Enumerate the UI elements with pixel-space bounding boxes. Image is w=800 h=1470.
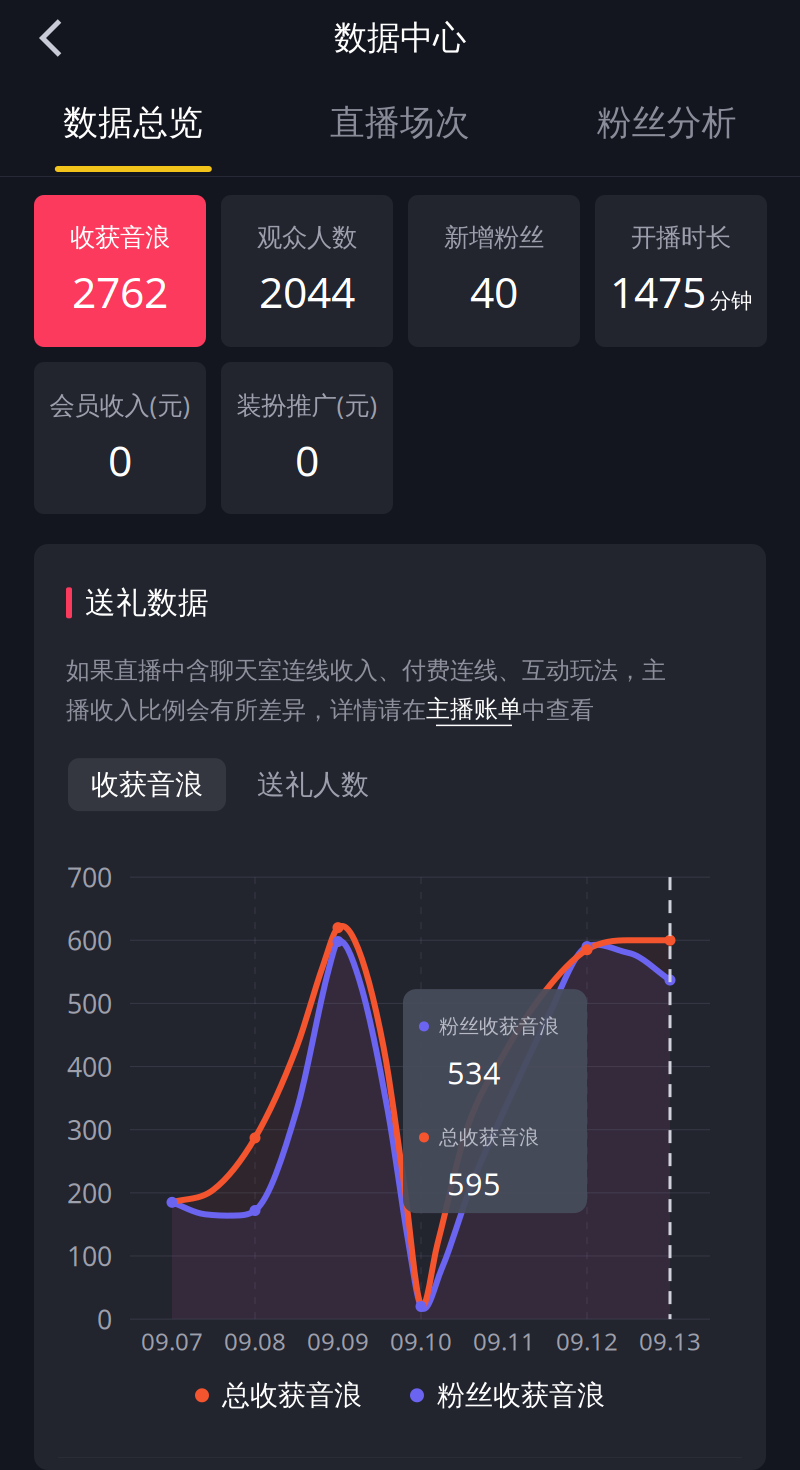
staticText: 300	[67, 1112, 112, 1147]
staticText: 595	[447, 1163, 501, 1204]
staticText: 如果直播中含聊天室连线收入、付费连线、互动玩法，主	[66, 656, 666, 685]
button[interactable]: 收获音浪	[68, 758, 226, 811]
button[interactable]: Back	[20, 7, 82, 69]
staticText: 700	[67, 859, 112, 895]
staticText: 总收获音浪	[439, 1125, 539, 1150]
staticText: 09.11	[473, 1325, 535, 1357]
button[interactable]: 收获音浪	[34, 195, 206, 347]
staticText: 2762	[72, 263, 168, 320]
staticText: 0	[97, 1301, 112, 1337]
staticText: 中查看	[522, 695, 594, 725]
staticText: 数据总览	[63, 101, 203, 144]
staticText: 观众人数	[257, 222, 357, 253]
staticText: 送礼人数	[257, 767, 369, 802]
staticText: 0	[295, 431, 319, 488]
staticText: 收获音浪	[70, 222, 170, 253]
staticText: 400	[67, 1049, 112, 1084]
staticText: 09.13	[639, 1325, 701, 1357]
staticText: 会员收入(元)	[49, 388, 190, 421]
button[interactable]: 主播账单	[426, 694, 522, 726]
staticText: 1475	[610, 263, 706, 320]
button[interactable]: 数据总览	[0, 76, 267, 176]
staticText: 收获音浪	[91, 767, 203, 802]
staticText: 2044	[259, 263, 355, 320]
staticText: 装扮推广(元)	[236, 388, 377, 421]
staticText: 09.12	[556, 1325, 618, 1357]
button[interactable]: 装扮推广(元)	[221, 362, 393, 514]
staticText: 主播账单	[426, 694, 522, 724]
staticText: 09.07	[141, 1325, 203, 1357]
staticText: 0	[108, 431, 132, 488]
button[interactable]: 新增粉丝	[408, 195, 580, 347]
staticText: 粉丝分析	[597, 101, 737, 144]
button[interactable]: 观众人数	[221, 195, 393, 347]
staticText: 粉丝收获音浪	[437, 1378, 605, 1412]
staticText: 09.08	[224, 1325, 286, 1357]
staticText: 开播时长	[631, 222, 731, 253]
staticText: 09.09	[307, 1325, 369, 1357]
staticText: 100	[67, 1238, 112, 1274]
staticText: 40	[470, 263, 518, 320]
staticText: 新增粉丝	[444, 222, 544, 253]
button[interactable]: 开播时长	[595, 195, 767, 347]
button[interactable]: 会员收入(元)	[34, 362, 206, 514]
button[interactable]: 直播场次	[267, 76, 533, 176]
staticText: 数据中心	[334, 17, 466, 58]
staticText: 总收获音浪	[222, 1378, 362, 1412]
button[interactable]: 粉丝分析	[533, 76, 800, 176]
staticText: 分钟	[710, 288, 752, 314]
staticText: 09.10	[390, 1325, 452, 1357]
staticText: 送礼数据	[85, 584, 209, 622]
staticText: 粉丝收获音浪	[439, 1014, 559, 1039]
staticText: 600	[67, 923, 112, 958]
staticText: 500	[67, 986, 112, 1021]
staticText: 200	[67, 1175, 112, 1210]
staticText: 直播场次	[330, 101, 470, 144]
button[interactable]: 送礼人数	[234, 758, 392, 811]
staticText: 534	[447, 1052, 501, 1093]
staticText: 播收入比例会有所差异，详情请在	[66, 695, 426, 725]
